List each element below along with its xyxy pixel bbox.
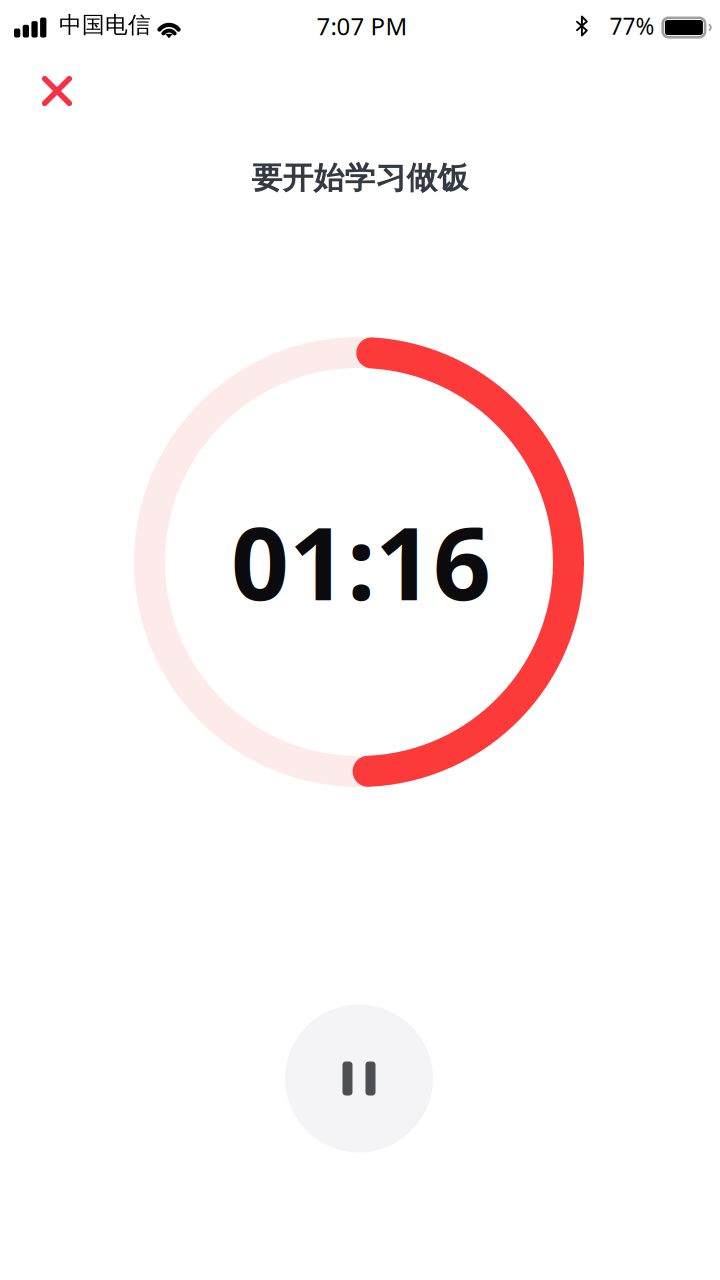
button[interactable]: Close (28, 62, 86, 120)
staticText: 01:16 (231, 494, 491, 628)
staticText: 要开始学习做饭 (251, 159, 468, 197)
staticText: 77% (609, 11, 654, 41)
staticText: 中国电信 (59, 11, 151, 39)
staticText: 7:07 PM (316, 10, 407, 42)
button[interactable]: Pause (285, 1004, 433, 1152)
